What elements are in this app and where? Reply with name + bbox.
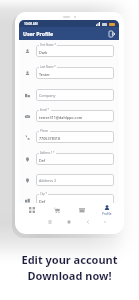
button[interactable]: Def xyxy=(36,153,114,165)
button[interactable]: Tester xyxy=(36,67,114,79)
staticText: Address 2 xyxy=(39,178,57,183)
staticText: Profile xyxy=(102,212,112,216)
staticText: Address 1 * xyxy=(40,151,55,155)
button[interactable]: Menu xyxy=(101,218,109,226)
button[interactable]: Store xyxy=(69,203,94,217)
button[interactable]: Home xyxy=(65,218,73,226)
staticText: Edit your account xyxy=(21,252,118,267)
button[interactable]: Address 2 xyxy=(36,174,114,186)
staticText: Last Name * xyxy=(40,65,56,69)
button[interactable]: Company xyxy=(36,89,114,101)
staticText: Dark xyxy=(39,50,48,55)
button[interactable]: Recents xyxy=(46,218,54,226)
staticText: 7706378318 xyxy=(39,136,61,141)
staticText: First Name * xyxy=(40,43,56,47)
staticText: Company xyxy=(39,93,56,98)
staticText: Def xyxy=(39,158,46,163)
button[interactable]: Dark xyxy=(36,45,114,57)
staticText: 10:08 AM xyxy=(24,22,38,26)
staticText: Download now! xyxy=(27,268,112,283)
staticText: Tester xyxy=(39,72,50,77)
button[interactable]: Def xyxy=(36,194,114,206)
staticText: Email * xyxy=(40,108,50,112)
staticText: User Profile xyxy=(23,30,54,37)
staticText: City * xyxy=(40,192,47,196)
button[interactable]: Log out xyxy=(107,29,116,38)
button[interactable]: Profile xyxy=(94,203,119,217)
staticText: tester311@dahlppo.com xyxy=(39,115,83,120)
button[interactable]: Cart xyxy=(44,203,69,217)
button[interactable]: tester311@dahlppo.com xyxy=(36,110,114,122)
button[interactable]: 7706378318 xyxy=(36,131,114,143)
button[interactable]: Back xyxy=(84,218,92,226)
staticText: Def xyxy=(39,199,46,204)
button[interactable]: Dashboard xyxy=(19,203,44,217)
staticText: Phone xyxy=(40,129,49,133)
